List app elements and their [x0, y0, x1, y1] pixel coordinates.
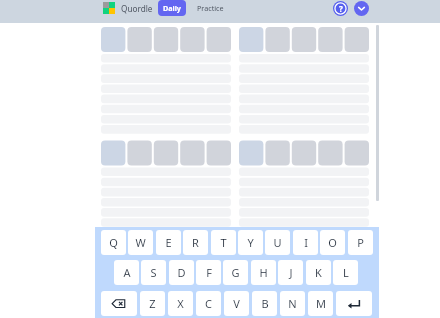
staticText: B: [261, 296, 269, 311]
button[interactable]: [101, 141, 127, 166]
button[interactable]: T: [211, 230, 236, 255]
button[interactable]: H: [251, 260, 276, 285]
button[interactable]: [153, 141, 179, 166]
staticText: K: [315, 265, 322, 280]
button[interactable]: S: [141, 260, 166, 285]
staticText: S: [150, 265, 157, 280]
button[interactable]: D: [169, 260, 194, 285]
button[interactable]: [239, 27, 265, 52]
button[interactable]: K: [306, 260, 331, 285]
button[interactable]: L: [333, 260, 358, 285]
button[interactable]: [343, 141, 369, 166]
button[interactable]: [343, 27, 369, 52]
button[interactable]: N: [280, 291, 305, 316]
staticText: N: [288, 296, 297, 311]
staticText: Quordle: [121, 3, 153, 14]
button[interactable]: Expand: [354, 1, 369, 16]
staticText: R: [192, 235, 199, 250]
button[interactable]: Enter: [336, 291, 372, 316]
button[interactable]: J: [278, 260, 303, 285]
button[interactable]: [291, 141, 317, 166]
staticText: Practice: [197, 3, 224, 13]
staticText: Daily: [163, 3, 181, 13]
staticText: U: [273, 235, 282, 250]
button[interactable]: Daily: [158, 0, 186, 16]
button[interactable]: E: [156, 230, 181, 255]
staticText: Y: [247, 235, 254, 250]
button[interactable]: [291, 27, 317, 52]
staticText: V: [233, 296, 240, 311]
button[interactable]: A: [114, 260, 139, 285]
staticText: H: [259, 265, 268, 280]
button[interactable]: [101, 27, 127, 52]
staticText: P: [357, 235, 364, 250]
staticText: I: [304, 235, 308, 250]
button[interactable]: V: [224, 291, 249, 316]
button[interactable]: U: [265, 230, 290, 255]
staticText: O: [328, 235, 337, 250]
staticText: W: [135, 235, 146, 250]
staticText: ?: [339, 3, 343, 14]
button[interactable]: [317, 27, 343, 52]
button[interactable]: O: [320, 230, 345, 255]
button[interactable]: [205, 141, 231, 166]
staticText: T: [220, 235, 227, 250]
button[interactable]: [127, 141, 153, 166]
button[interactable]: [317, 141, 343, 166]
button[interactable]: [265, 27, 291, 52]
staticText: J: [289, 265, 293, 280]
button[interactable]: [265, 141, 291, 166]
staticText: Q: [109, 235, 118, 250]
button[interactable]: C: [196, 291, 221, 316]
button[interactable]: B: [252, 291, 277, 316]
staticText: F: [206, 265, 212, 280]
button[interactable]: [179, 141, 205, 166]
button[interactable]: X: [168, 291, 193, 316]
staticText: M: [316, 296, 326, 311]
button[interactable]: P: [348, 230, 373, 255]
staticText: L: [343, 265, 349, 280]
button[interactable]: Q: [101, 230, 126, 255]
button[interactable]: Help: [333, 1, 348, 16]
button[interactable]: Practice: [194, 1, 227, 15]
button[interactable]: [239, 141, 265, 166]
button[interactable]: I: [293, 230, 318, 255]
staticText: D: [177, 265, 186, 280]
button[interactable]: Z: [140, 291, 165, 316]
button[interactable]: R: [183, 230, 208, 255]
button[interactable]: W: [128, 230, 153, 255]
staticText: E: [165, 235, 172, 250]
button[interactable]: G: [223, 260, 248, 285]
button[interactable]: [153, 27, 179, 52]
button[interactable]: [179, 27, 205, 52]
button[interactable]: [205, 27, 231, 52]
staticText: Z: [149, 296, 156, 311]
button[interactable]: F: [196, 260, 221, 285]
button[interactable]: M: [308, 291, 333, 316]
button[interactable]: Backspace: [101, 291, 137, 316]
staticText: A: [123, 265, 131, 280]
staticText: G: [231, 265, 240, 280]
staticText: C: [205, 296, 212, 311]
button[interactable]: Y: [238, 230, 263, 255]
button[interactable]: [127, 27, 153, 52]
staticText: X: [177, 296, 184, 311]
